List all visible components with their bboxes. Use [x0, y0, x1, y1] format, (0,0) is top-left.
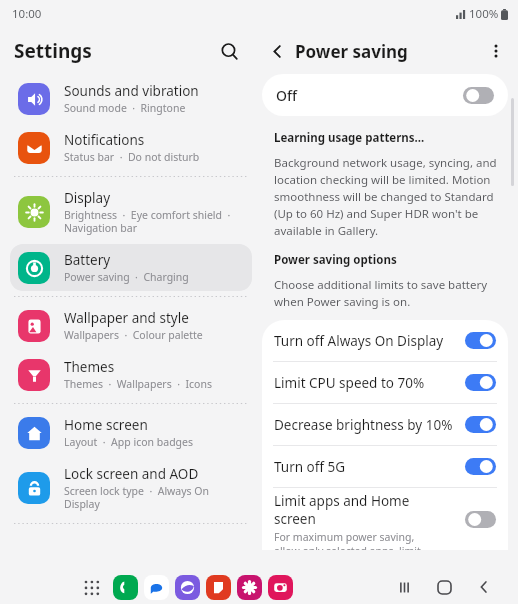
staticText: Home screen: [64, 416, 148, 434]
staticText: Choose additional limits to save battery…: [274, 277, 500, 309]
staticText: Sounds and vibration: [64, 82, 199, 100]
button[interactable]: Back: [262, 36, 292, 66]
staticText: Background network usage, syncing, and l…: [274, 155, 500, 238]
button[interactable]: phone: [113, 575, 138, 600]
staticText: Turn off Always On Display: [274, 332, 444, 350]
staticText: Decrease brightness by 10%: [274, 416, 453, 434]
staticText: Wallpaper and style: [64, 309, 189, 327]
staticText: For maximum power saving, allow only sel…: [274, 530, 430, 550]
staticText: 100%: [469, 6, 499, 22]
staticText: Wallpapers · Colour palette: [64, 328, 203, 342]
staticText: Off: [276, 86, 297, 105]
staticText: Turn off 5G: [274, 458, 346, 476]
button[interactable]: Limit apps and Home screen: [262, 488, 508, 550]
button[interactable]: Search: [212, 34, 246, 68]
staticText: Battery: [64, 251, 111, 269]
button[interactable]: files: [206, 575, 231, 600]
staticText: Power saving: [295, 40, 408, 63]
staticText: Power saving · Charging: [64, 270, 189, 284]
button[interactable]: Decrease brightness by 10%: [262, 404, 508, 445]
button[interactable]: msg: [144, 575, 169, 600]
button[interactable]: internet: [175, 575, 200, 600]
staticText: 10:00: [12, 6, 42, 22]
button[interactable]: Off: [262, 74, 508, 116]
staticText: Brightness · Eye comfort shield · Naviga…: [64, 208, 231, 235]
button[interactable]: Turn off Always On Display: [262, 320, 508, 361]
staticText: Limit apps and Home screen: [274, 492, 430, 528]
button[interactable]: Sounds and vibration: [10, 75, 252, 122]
button[interactable]: Limit CPU speed to 70%: [262, 362, 508, 403]
button[interactable]: Turn off 5G: [262, 446, 508, 487]
button[interactable]: Lock screen and AOD: [10, 458, 252, 518]
button[interactable]: camera: [268, 575, 293, 600]
button[interactable]: Recents: [384, 570, 424, 604]
staticText: Power saving options: [274, 252, 397, 268]
staticText: Settings: [14, 38, 92, 64]
button[interactable]: store: [237, 575, 262, 600]
staticText: Learning usage patterns...: [274, 130, 425, 146]
button[interactable]: Display: [10, 182, 252, 242]
staticText: Status bar · Do not disturb: [64, 150, 200, 164]
button[interactable]: Home: [424, 570, 464, 604]
button[interactable]: More options: [480, 35, 512, 67]
button[interactable]: Notifications: [10, 124, 252, 171]
staticText: Screen lock type · Always On Display: [64, 484, 244, 511]
button[interactable]: Themes: [10, 351, 252, 398]
staticText: Lock screen and AOD: [64, 465, 199, 483]
button[interactable]: Wallpaper and style: [10, 302, 252, 349]
staticText: Notifications: [64, 131, 145, 149]
staticText: Layout · App icon badges: [64, 435, 194, 449]
button[interactable]: Back: [464, 570, 504, 604]
button[interactable]: Apps: [78, 574, 104, 600]
staticText: Limit CPU speed to 70%: [274, 374, 425, 392]
staticText: Display: [64, 189, 111, 207]
staticText: Themes: [64, 358, 115, 376]
button[interactable]: Battery: [10, 244, 252, 291]
staticText: Themes · Wallpapers · Icons: [64, 377, 212, 391]
button[interactable]: Home screen: [10, 409, 252, 456]
staticText: Sound mode · Ringtone: [64, 101, 186, 115]
